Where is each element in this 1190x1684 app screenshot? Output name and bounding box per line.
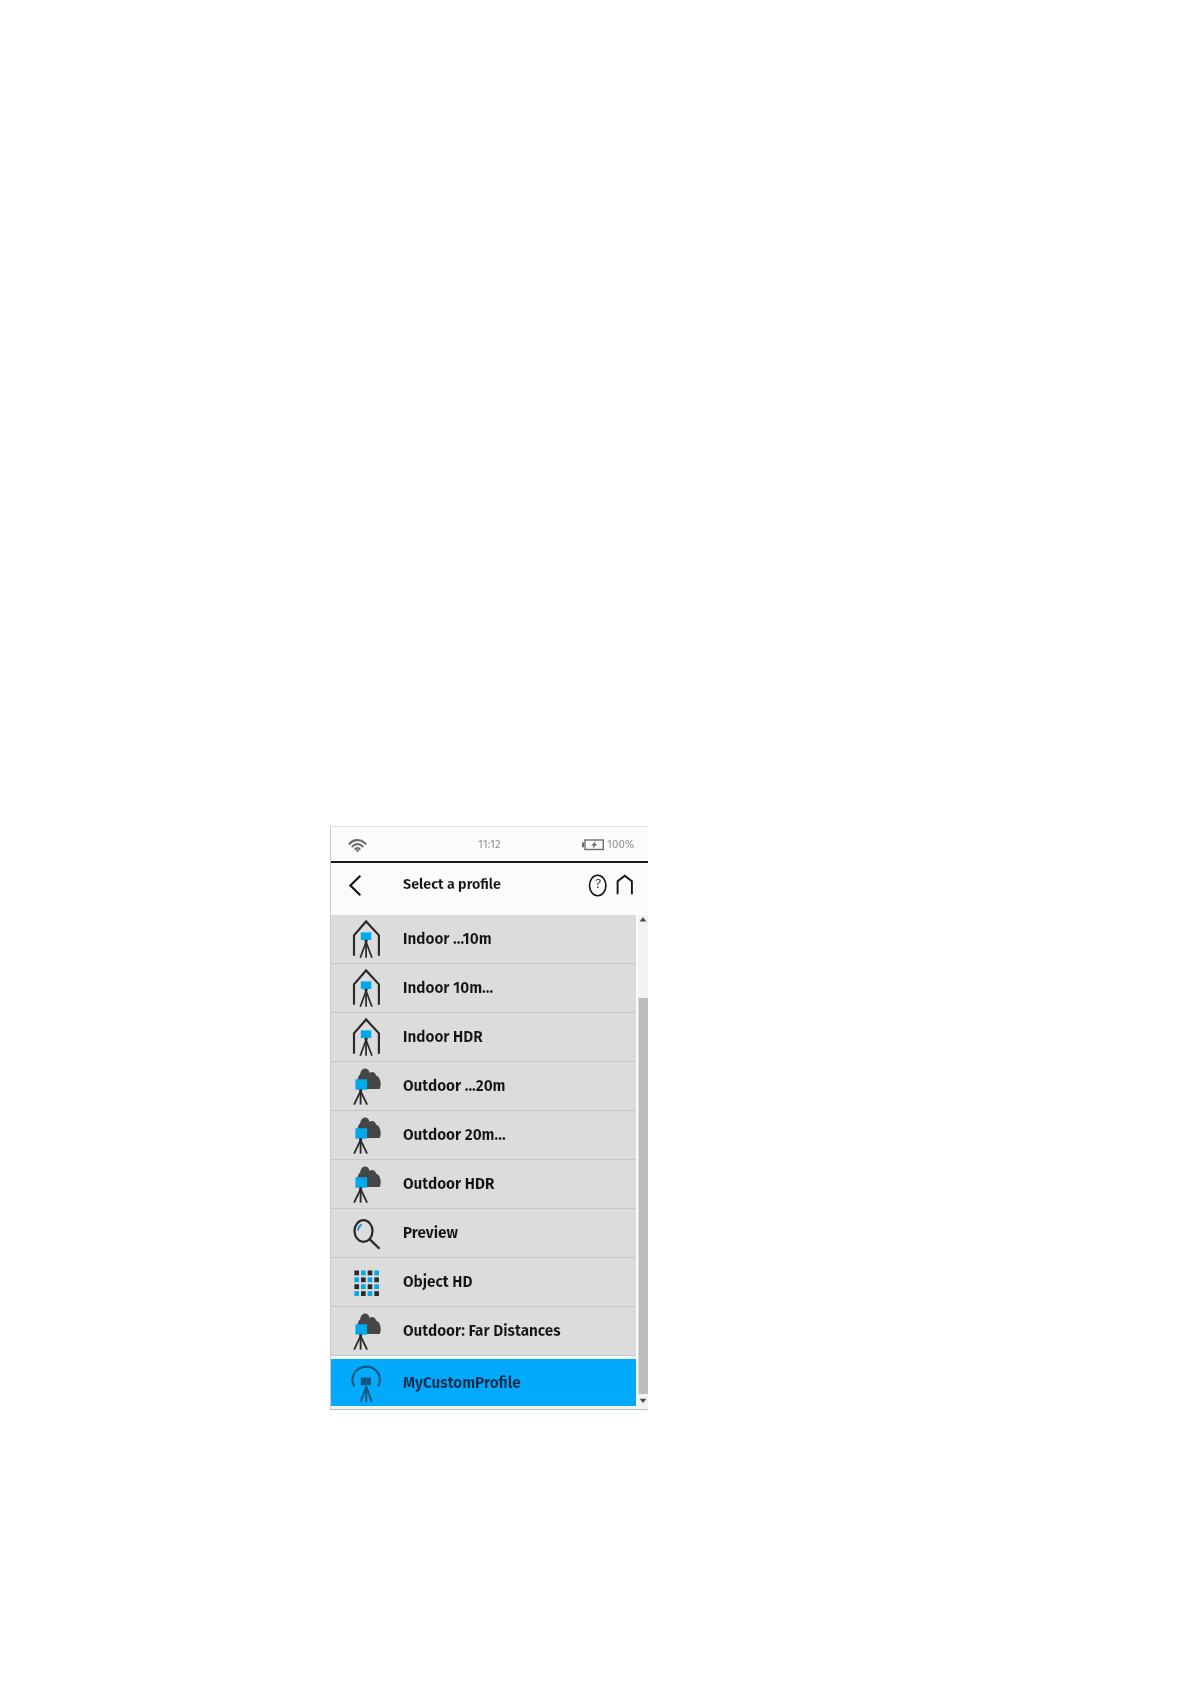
staticText: Outdoor: Far Distances [403,1322,561,1340]
staticText: Indoor 10m... [403,979,494,997]
staticText: MyCustomProfile [403,1374,521,1392]
button[interactable]: Object HD [330,1258,636,1306]
button[interactable]: Outdoor: Far Distances [330,1307,636,1355]
button[interactable]: Home [612,870,640,898]
button[interactable]: Indoor ...10m [330,915,636,963]
staticText: Indoor ...10m [403,930,492,948]
staticText: Outdoor ...20m [403,1077,506,1095]
staticText: Outdoor HDR [403,1175,495,1193]
button[interactable]: Outdoor 20m... [330,1111,636,1159]
staticText: 11:12 [478,837,501,851]
button[interactable]: Back [343,869,369,895]
staticText: ? [595,875,602,891]
staticText: Indoor HDR [403,1028,483,1046]
staticText: 100% [607,837,635,851]
staticText: Preview [403,1224,458,1242]
button[interactable]: MyCustomProfile [330,1359,636,1406]
staticText: Object HD [403,1273,473,1291]
staticText: Outdoor 20m... [403,1126,506,1144]
button[interactable]: Outdoor HDR [330,1160,636,1208]
button[interactable]: Outdoor ...20m [330,1062,636,1110]
button[interactable]: Help [584,870,612,898]
button[interactable]: Indoor HDR [330,1013,636,1061]
button[interactable]: Preview [330,1209,636,1257]
staticText: Select a profile [403,876,501,893]
button[interactable]: Indoor 10m... [330,964,636,1012]
